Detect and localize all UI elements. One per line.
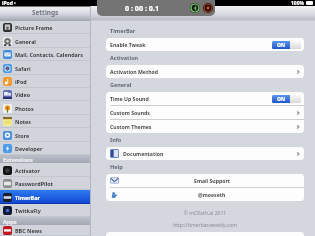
staticText: Custom Themes [110,123,152,130]
staticText: Enable Tweak [110,41,146,48]
button[interactable]: PasswordPilot [0,177,91,190]
button[interactable]: Time Up Sound [106,92,304,105]
staticText: Activation Method [110,68,159,75]
button[interactable]: Timer [97,0,215,16]
staticText: ON [277,96,286,103]
staticText: Developer [15,145,43,152]
staticText: Custom Sounds [110,109,150,116]
button[interactable]: Enable toggle, on [272,41,301,49]
button[interactable]: Enable toggle, on [272,95,301,103]
staticText: Documentation [123,150,164,157]
staticText: Activator [15,167,40,174]
staticText: Picture Frame [15,24,53,31]
button[interactable]: Activator [0,163,91,177]
staticText: Video [15,91,31,98]
button[interactable]: Custom Sounds [106,106,304,119]
button[interactable]: General [0,34,91,48]
staticText: ON [277,42,286,49]
staticText: iPod ᴵ [2,0,16,7]
button[interactable]: Documentation [106,147,304,160]
button[interactable]: BBC News [0,225,91,236]
staticText: Apps [3,218,17,225]
staticText: General [110,81,132,88]
button[interactable]: Enable Tweak [106,38,304,51]
button[interactable]: Notes [0,115,91,128]
button[interactable]: Safari [0,61,91,75]
staticText: http://timerbar.weebly.com [106,222,304,229]
button[interactable]: Developer [0,142,91,155]
staticText: 100% [291,0,305,7]
staticText: Notes [15,118,32,125]
staticText: iPod [15,78,27,85]
staticText: Safari [15,65,31,72]
button[interactable]: Custom Themes [106,120,304,133]
staticText: Photos [15,105,34,112]
staticText: © mOSsth.al 2011 [106,210,304,217]
staticText: Activation [110,54,139,61]
staticText: @moeseth [198,191,226,198]
button[interactable]: TwitkaFly [0,204,91,217]
staticText: 0 : 00 : 0.1 [125,3,160,13]
staticText: Settings [32,8,59,17]
button[interactable]: @moeseth [106,188,304,201]
staticText: Email Support [194,177,231,184]
staticText: General [15,38,36,45]
staticText: Info [110,136,122,143]
button[interactable]: iPod [0,75,91,88]
button[interactable]: Email Support [106,174,304,187]
staticText: TwitkaFly [15,207,41,214]
staticText: Store [15,132,30,139]
button[interactable]: TimerBar [0,190,91,204]
button[interactable]: Video [0,88,91,101]
button[interactable]: Store [0,128,91,142]
staticText: Time Up Sound [110,95,149,102]
button[interactable]: Activation Method [106,65,304,78]
staticText: Help [110,163,123,170]
button[interactable]: Picture Frame [0,21,91,34]
button[interactable]: Mail, Contacts, Calendars [0,48,91,61]
staticText: Mail, Contacts, Calendars [15,51,83,58]
staticText: PasswordPilot [15,180,53,187]
button[interactable]: Photos [0,101,91,115]
staticText: Extensions [3,156,33,163]
staticText: TimerBar [15,194,40,201]
staticText: TimerBar [110,27,136,34]
staticText: BBC News [15,227,42,234]
